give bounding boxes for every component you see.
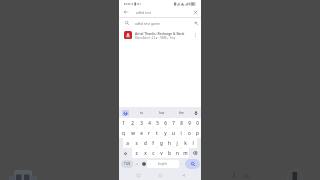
staticText: h xyxy=(168,140,171,146)
button[interactable]: z xyxy=(132,148,141,158)
staticText: English xyxy=(158,162,168,166)
button[interactable]: 2 xyxy=(128,118,137,128)
button[interactable]: Airtel Thanks: Recharge & Bank xyxy=(119,28,201,41)
button[interactable]: g xyxy=(157,138,165,148)
button[interactable]: y xyxy=(161,128,169,138)
button[interactable]: Voice input xyxy=(191,108,200,117)
button[interactable]: k xyxy=(181,138,189,148)
button[interactable]: Back xyxy=(119,7,132,17)
staticText: v xyxy=(160,150,163,156)
staticText: o xyxy=(188,130,191,136)
staticText: 1 xyxy=(122,120,125,126)
button[interactable]: Emoji xyxy=(133,158,140,170)
button[interactable]: t xyxy=(153,128,161,138)
button[interactable]: Recent apps xyxy=(134,171,142,179)
staticText: 8 xyxy=(180,120,183,126)
button[interactable]: 9 xyxy=(185,118,193,128)
staticText: 4 xyxy=(148,120,151,126)
staticText: to xyxy=(140,111,144,115)
button[interactable]: o xyxy=(185,128,193,138)
button[interactable]: Shift xyxy=(119,148,132,158)
staticText: x xyxy=(144,150,147,156)
button[interactable]: n xyxy=(173,148,181,158)
button[interactable]: adhd test game xyxy=(119,18,201,28)
staticText: d xyxy=(144,140,147,146)
staticText: 6 xyxy=(164,120,167,126)
staticText: c xyxy=(152,150,155,156)
button[interactable]: j xyxy=(173,138,181,148)
button[interactable]: Clear query xyxy=(190,7,201,17)
button[interactable]: v xyxy=(157,148,165,158)
button[interactable]: 1 xyxy=(119,118,128,128)
button[interactable]: r xyxy=(145,128,153,138)
staticText: q xyxy=(122,130,125,136)
staticText: 5 xyxy=(156,120,159,126)
staticText: 7 xyxy=(172,120,175,126)
button[interactable]: 0 xyxy=(193,118,201,128)
staticText: i xyxy=(180,130,182,136)
button[interactable]: c xyxy=(149,148,157,158)
button[interactable]: Back xyxy=(179,171,187,179)
button[interactable]: d xyxy=(141,138,149,148)
staticText: ?123 xyxy=(124,162,131,166)
button[interactable]: 8 xyxy=(177,118,185,128)
button[interactable]: x xyxy=(141,148,149,158)
button[interactable]: More options xyxy=(192,32,198,38)
button[interactable]: Backspace xyxy=(189,148,201,158)
button[interactable]: a xyxy=(123,138,132,148)
button[interactable]: English xyxy=(147,160,179,168)
button[interactable]: 5 xyxy=(153,118,161,128)
staticText: Airtel Thanks: Recharge & Bank xyxy=(135,31,185,35)
button[interactable]: Insert suggestion xyxy=(192,18,201,28)
staticText: p xyxy=(196,130,199,136)
staticText: j xyxy=(176,140,178,146)
staticText: b xyxy=(168,150,171,156)
button[interactable]: 7 xyxy=(169,118,177,128)
button[interactable]: u xyxy=(169,128,177,138)
button[interactable]: s xyxy=(132,138,141,148)
button[interactable]: Search xyxy=(185,159,200,169)
staticText: m xyxy=(183,150,188,156)
staticText: 3 xyxy=(140,120,143,126)
button[interactable]: 3 xyxy=(137,118,145,128)
staticText: Bharti Airtel · 4.2★ · 100M+ · Free xyxy=(135,36,176,40)
staticText: z xyxy=(135,150,138,156)
button[interactable]: l xyxy=(189,138,197,148)
staticText: a xyxy=(126,140,129,146)
button[interactable]: e xyxy=(137,128,145,138)
button[interactable]: p xyxy=(193,128,201,138)
staticText: the xyxy=(179,111,184,115)
staticText: g xyxy=(160,140,163,146)
button[interactable]: m xyxy=(181,148,189,158)
button[interactable]: i xyxy=(177,128,185,138)
staticText: r xyxy=(148,130,150,136)
staticText: adhd test xyxy=(136,10,152,15)
staticText: e xyxy=(140,130,143,136)
staticText: t xyxy=(156,130,158,136)
button[interactable]: Home xyxy=(156,171,164,179)
button[interactable]: Stickers xyxy=(140,158,147,170)
staticText: 2 xyxy=(131,120,134,126)
button[interactable]: 4 xyxy=(145,118,153,128)
button[interactable]: q xyxy=(119,128,128,138)
staticText: k xyxy=(184,140,187,146)
button[interactable]: h xyxy=(165,138,173,148)
staticText: y xyxy=(164,130,167,136)
button[interactable]: w xyxy=(128,128,137,138)
staticText: 0 xyxy=(196,120,199,126)
button[interactable]: b xyxy=(165,148,173,158)
button[interactable]: ?123 xyxy=(121,160,133,168)
staticText: n xyxy=(176,150,179,156)
staticText: 9 xyxy=(188,120,191,126)
button[interactable]: Google xyxy=(122,110,129,116)
staticText: s xyxy=(135,140,138,146)
button[interactable]: f xyxy=(149,138,157,148)
staticText: w xyxy=(131,130,135,136)
staticText: u xyxy=(172,130,175,136)
staticText: l xyxy=(192,140,194,146)
staticText: has xyxy=(159,111,165,115)
staticText: adhd test game xyxy=(135,21,160,26)
button[interactable]: 6 xyxy=(161,118,169,128)
staticText: f xyxy=(152,140,154,146)
